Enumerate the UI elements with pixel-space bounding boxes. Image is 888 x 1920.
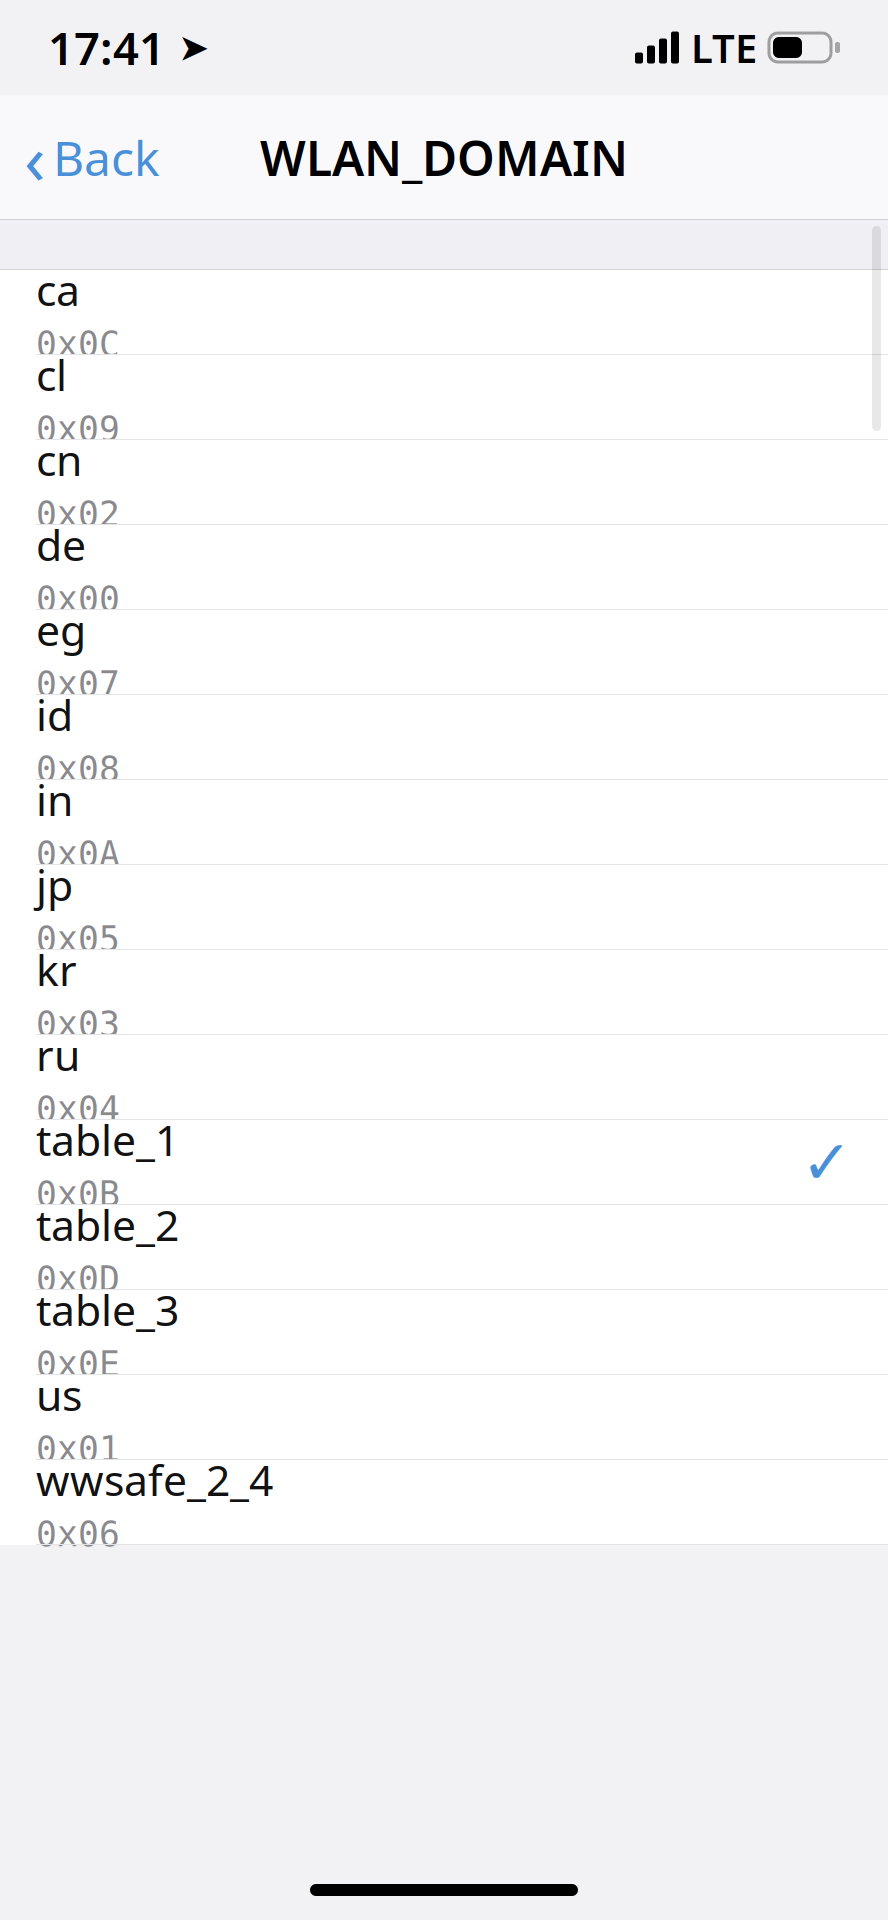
button[interactable]: us <box>0 1375 888 1460</box>
button[interactable]: kr <box>0 950 888 1035</box>
staticText: Back <box>53 126 160 189</box>
button[interactable]: eg <box>0 610 888 695</box>
staticText: table_2 <box>36 1196 179 1253</box>
staticText: 0x06 <box>36 1515 120 1554</box>
staticText: cl <box>36 346 67 403</box>
staticText: 17:41 <box>48 17 165 78</box>
staticText: eg <box>36 601 86 658</box>
staticText: 0x08 <box>36 750 120 789</box>
button[interactable]: table_3 <box>0 1290 888 1375</box>
staticText: LTE <box>691 21 757 74</box>
staticText: jp <box>36 856 73 913</box>
staticText: ru <box>36 1026 80 1083</box>
button[interactable]: in <box>0 780 888 865</box>
staticText: 0x09 <box>36 410 120 449</box>
staticText: wwsafe_2_4 <box>36 1451 273 1508</box>
staticText: de <box>36 516 86 573</box>
staticText: 0x05 <box>36 920 120 959</box>
staticText: 0x0E <box>36 1345 120 1384</box>
button[interactable]: de <box>0 525 888 610</box>
staticText: WLAN_DOMAIN <box>260 126 628 189</box>
staticText: 0x0A <box>36 835 120 874</box>
staticText: ✓ <box>801 1128 852 1197</box>
button[interactable]: id <box>0 695 888 780</box>
staticText: 0x04 <box>36 1090 120 1129</box>
button[interactable]: cl <box>0 355 888 440</box>
button[interactable]: table_1 <box>0 1120 888 1205</box>
staticText: ➤ <box>165 26 209 69</box>
staticText: 0x01 <box>36 1430 120 1469</box>
staticText: table_1 <box>36 1111 179 1168</box>
staticText: ‹ <box>24 111 45 204</box>
button[interactable]: ca <box>0 270 888 355</box>
staticText: id <box>36 686 73 743</box>
staticText: in <box>36 771 73 828</box>
staticText: 0x02 <box>36 495 120 534</box>
staticText: 0x0D <box>36 1260 120 1299</box>
button[interactable]: ‹ <box>0 101 184 213</box>
staticText: 0x07 <box>36 665 120 704</box>
staticText: cn <box>36 431 82 488</box>
button[interactable]: ru <box>0 1035 888 1120</box>
staticText: 0x03 <box>36 1005 120 1044</box>
staticText: 0x0C <box>36 325 120 364</box>
button[interactable]: table_2 <box>0 1205 888 1290</box>
staticText: 0x0B <box>36 1175 120 1214</box>
button[interactable]: jp <box>0 865 888 950</box>
staticText: ca <box>36 261 80 318</box>
staticText: 0x00 <box>36 580 120 619</box>
staticText: us <box>36 1366 82 1423</box>
button[interactable]: cn <box>0 440 888 525</box>
button[interactable]: wwsafe_2_4 <box>0 1460 888 1545</box>
staticText: table_3 <box>36 1281 179 1338</box>
staticText: kr <box>36 941 77 998</box>
